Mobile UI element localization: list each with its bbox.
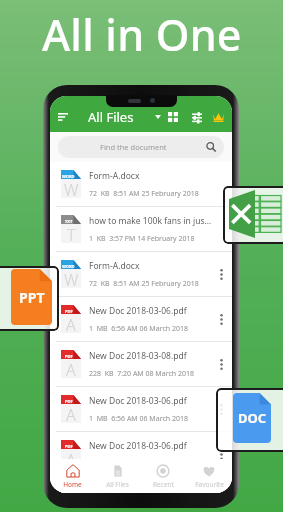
button[interactable]: Sort (152, 111, 164, 123)
button[interactable]: More options (214, 477, 229, 492)
staticText: PDF (65, 399, 73, 404)
staticText: PDF (65, 481, 73, 486)
staticText: PPT (19, 288, 45, 307)
staticText: W (64, 269, 79, 288)
button[interactable]: Recent (140, 459, 186, 493)
staticText: PDF (65, 354, 73, 359)
button[interactable]: Home (50, 459, 95, 493)
staticText: 72 KB 8:51 AM 25 February 2018 (89, 279, 199, 289)
staticText: A (66, 486, 76, 493)
button[interactable]: More options (214, 387, 229, 431)
staticText: T (67, 224, 76, 243)
staticText: 1 MB 6:56 AM 06 March 2018 (89, 324, 188, 334)
button[interactable]: Favourite (186, 459, 232, 493)
staticText: Home (63, 480, 82, 489)
staticText: All Files (106, 480, 129, 489)
staticText: 228 KB 7:20 AM 08 March 2018 (89, 369, 194, 379)
button[interactable]: A (50, 432, 232, 477)
staticText: A (66, 404, 76, 423)
staticText: Form-A.docx (89, 170, 140, 182)
staticText: 1 MB 6:56 AM 06 March 2018 (89, 414, 188, 424)
staticText: PDF (65, 309, 73, 314)
staticText: New Doc 2018-03-06.pdf (89, 305, 187, 317)
button[interactable]: More options (214, 342, 229, 386)
staticText: how to make 100k fans in just 10... (89, 215, 214, 227)
button[interactable]: More options (214, 297, 229, 341)
button[interactable]: All Files (95, 459, 140, 493)
button[interactable]: A (50, 342, 232, 387)
staticText: Find the document (100, 142, 167, 152)
staticText: New Doc 2018-03-08.pdf (89, 350, 187, 362)
button[interactable]: W (50, 162, 232, 207)
staticText: New Doc 2018-03-06.pdf (89, 440, 187, 452)
staticText: W (64, 179, 79, 198)
staticText: WORD (62, 174, 75, 179)
button[interactable]: W (50, 252, 232, 297)
button[interactable]: Grid view (165, 109, 181, 125)
button[interactable]: T (50, 207, 232, 252)
staticText: Recent (153, 480, 174, 489)
button[interactable]: More options (214, 162, 229, 206)
staticText: TXT (65, 219, 73, 224)
staticText: DOC (238, 409, 267, 427)
button[interactable]: Premium (210, 109, 226, 125)
staticText: New Doc 2018-03-06.pdf (89, 477, 187, 489)
button[interactable]: A (50, 297, 232, 342)
button[interactable]: A (50, 387, 232, 432)
staticText: A (66, 449, 76, 468)
button[interactable]: Filter (189, 109, 205, 125)
staticText: A (66, 314, 76, 333)
button[interactable]: Find the document (58, 136, 224, 158)
button[interactable]: More options (214, 432, 229, 476)
staticText: All Files (88, 108, 134, 126)
staticText: WORD (62, 264, 75, 269)
button[interactable]: More options (214, 207, 229, 251)
button[interactable]: More options (214, 252, 229, 296)
staticText: All in One (42, 5, 242, 64)
staticText: 72 KB 8:51 AM 25 February 2018 (89, 189, 199, 199)
button[interactable]: A (50, 477, 232, 493)
staticText: 1 MB 6:56 AM 06 March 2018 (89, 459, 188, 469)
staticText: A (66, 359, 76, 378)
staticText: PDF (65, 444, 73, 449)
button[interactable]: Menu (54, 108, 71, 125)
staticText: Form-A.docx (89, 260, 140, 272)
staticText: Favourite (195, 480, 224, 489)
staticText: New Doc 2018-03-06.pdf (89, 395, 187, 407)
staticText: 1 KB 3:57 PM 14 February 2018 (89, 234, 195, 244)
